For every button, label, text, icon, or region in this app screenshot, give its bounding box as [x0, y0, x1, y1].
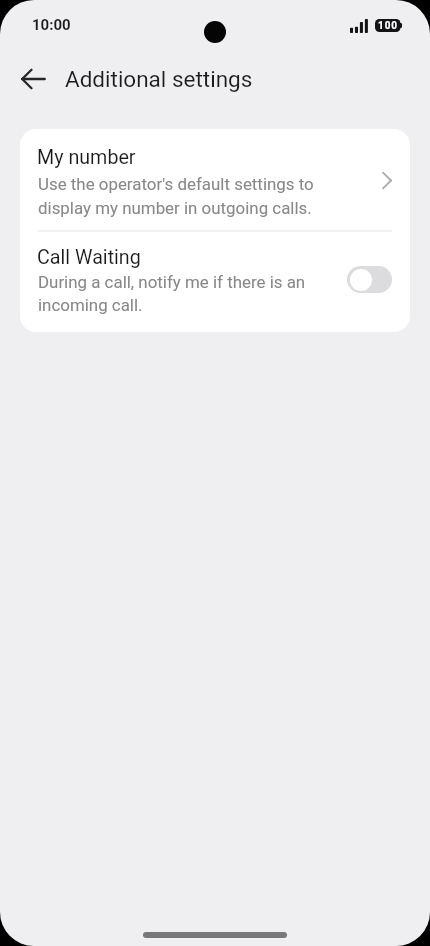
staticText: 100 [378, 20, 398, 32]
button[interactable]: Back [9, 55, 57, 103]
staticText: display my number in outgoing calls. [38, 198, 312, 218]
button[interactable]: Call Waiting [20, 231, 410, 332]
button[interactable]: Call Waiting toggle [347, 266, 392, 293]
staticText: During a call, notify me if there is an [38, 272, 306, 292]
button[interactable]: My number [20, 129, 410, 230]
staticText: 10:00 [32, 16, 71, 34]
staticText: My number [37, 146, 136, 169]
staticText: Use the operator's default settings to [38, 174, 314, 194]
staticText: Additional settings [65, 66, 253, 92]
staticText: Call Waiting [37, 246, 141, 269]
staticText: incoming call. [38, 295, 143, 315]
